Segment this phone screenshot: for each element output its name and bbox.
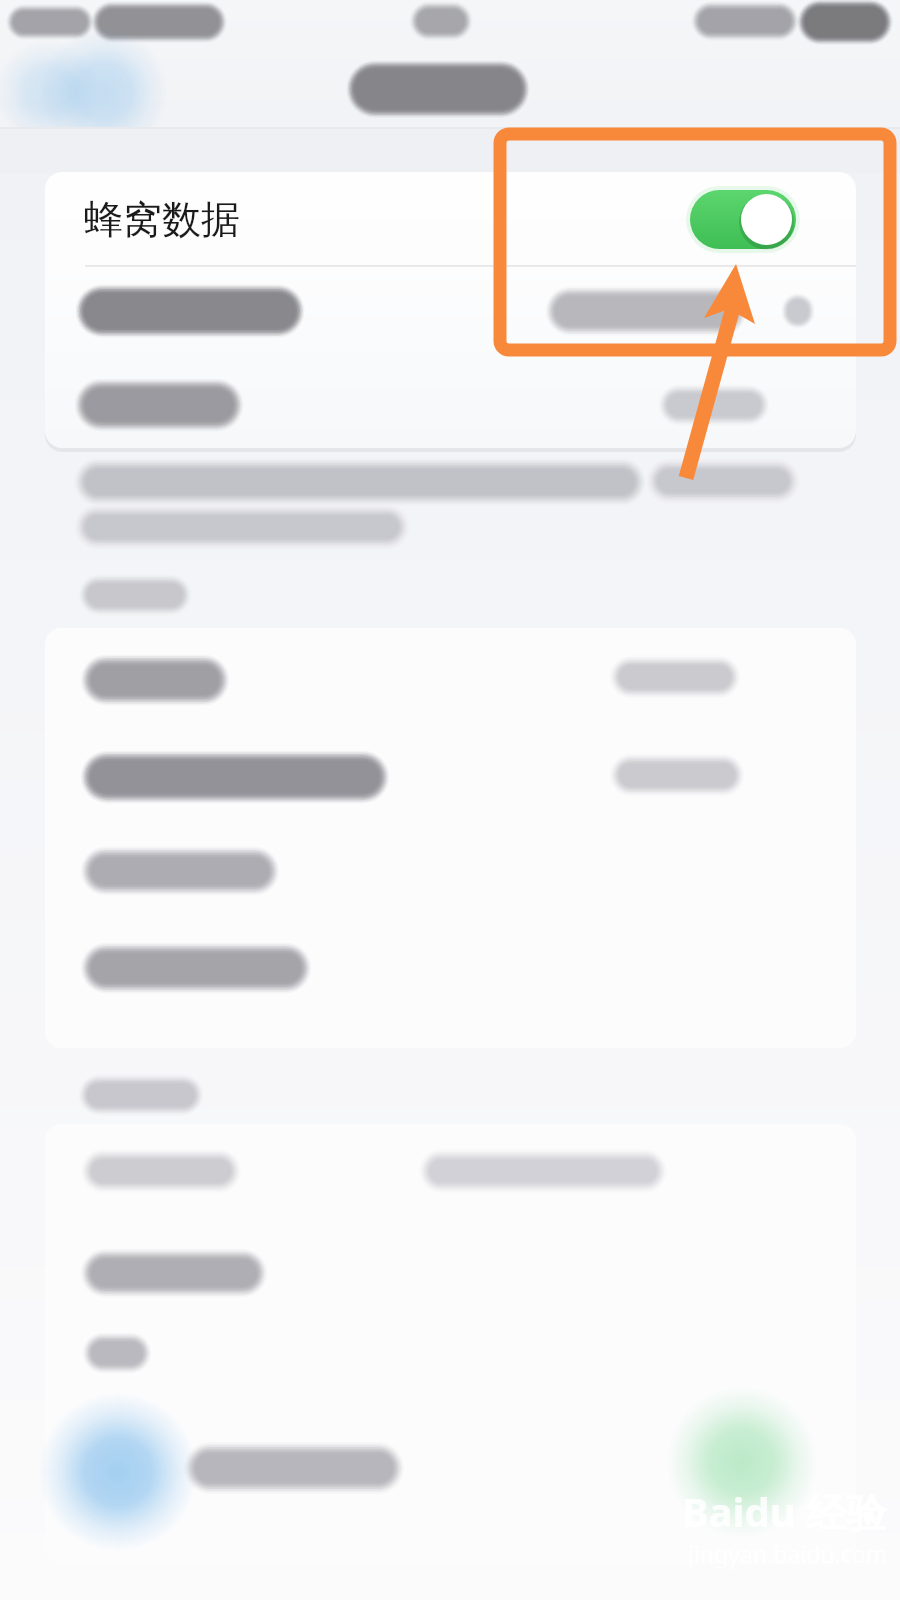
button[interactable]: Cellular data toggle, on <box>686 186 800 253</box>
button[interactable] <box>45 916 856 1012</box>
button[interactable] <box>45 358 856 448</box>
button[interactable] <box>45 724 856 820</box>
button[interactable] <box>45 820 856 916</box>
button[interactable] <box>45 1224 856 1324</box>
button[interactable] <box>45 1124 856 1224</box>
button[interactable] <box>45 1420 856 1520</box>
button[interactable] <box>45 172 856 266</box>
button[interactable]: Back <box>14 62 134 124</box>
button[interactable] <box>45 267 856 357</box>
button[interactable] <box>45 1310 856 1410</box>
button[interactable] <box>45 628 856 724</box>
